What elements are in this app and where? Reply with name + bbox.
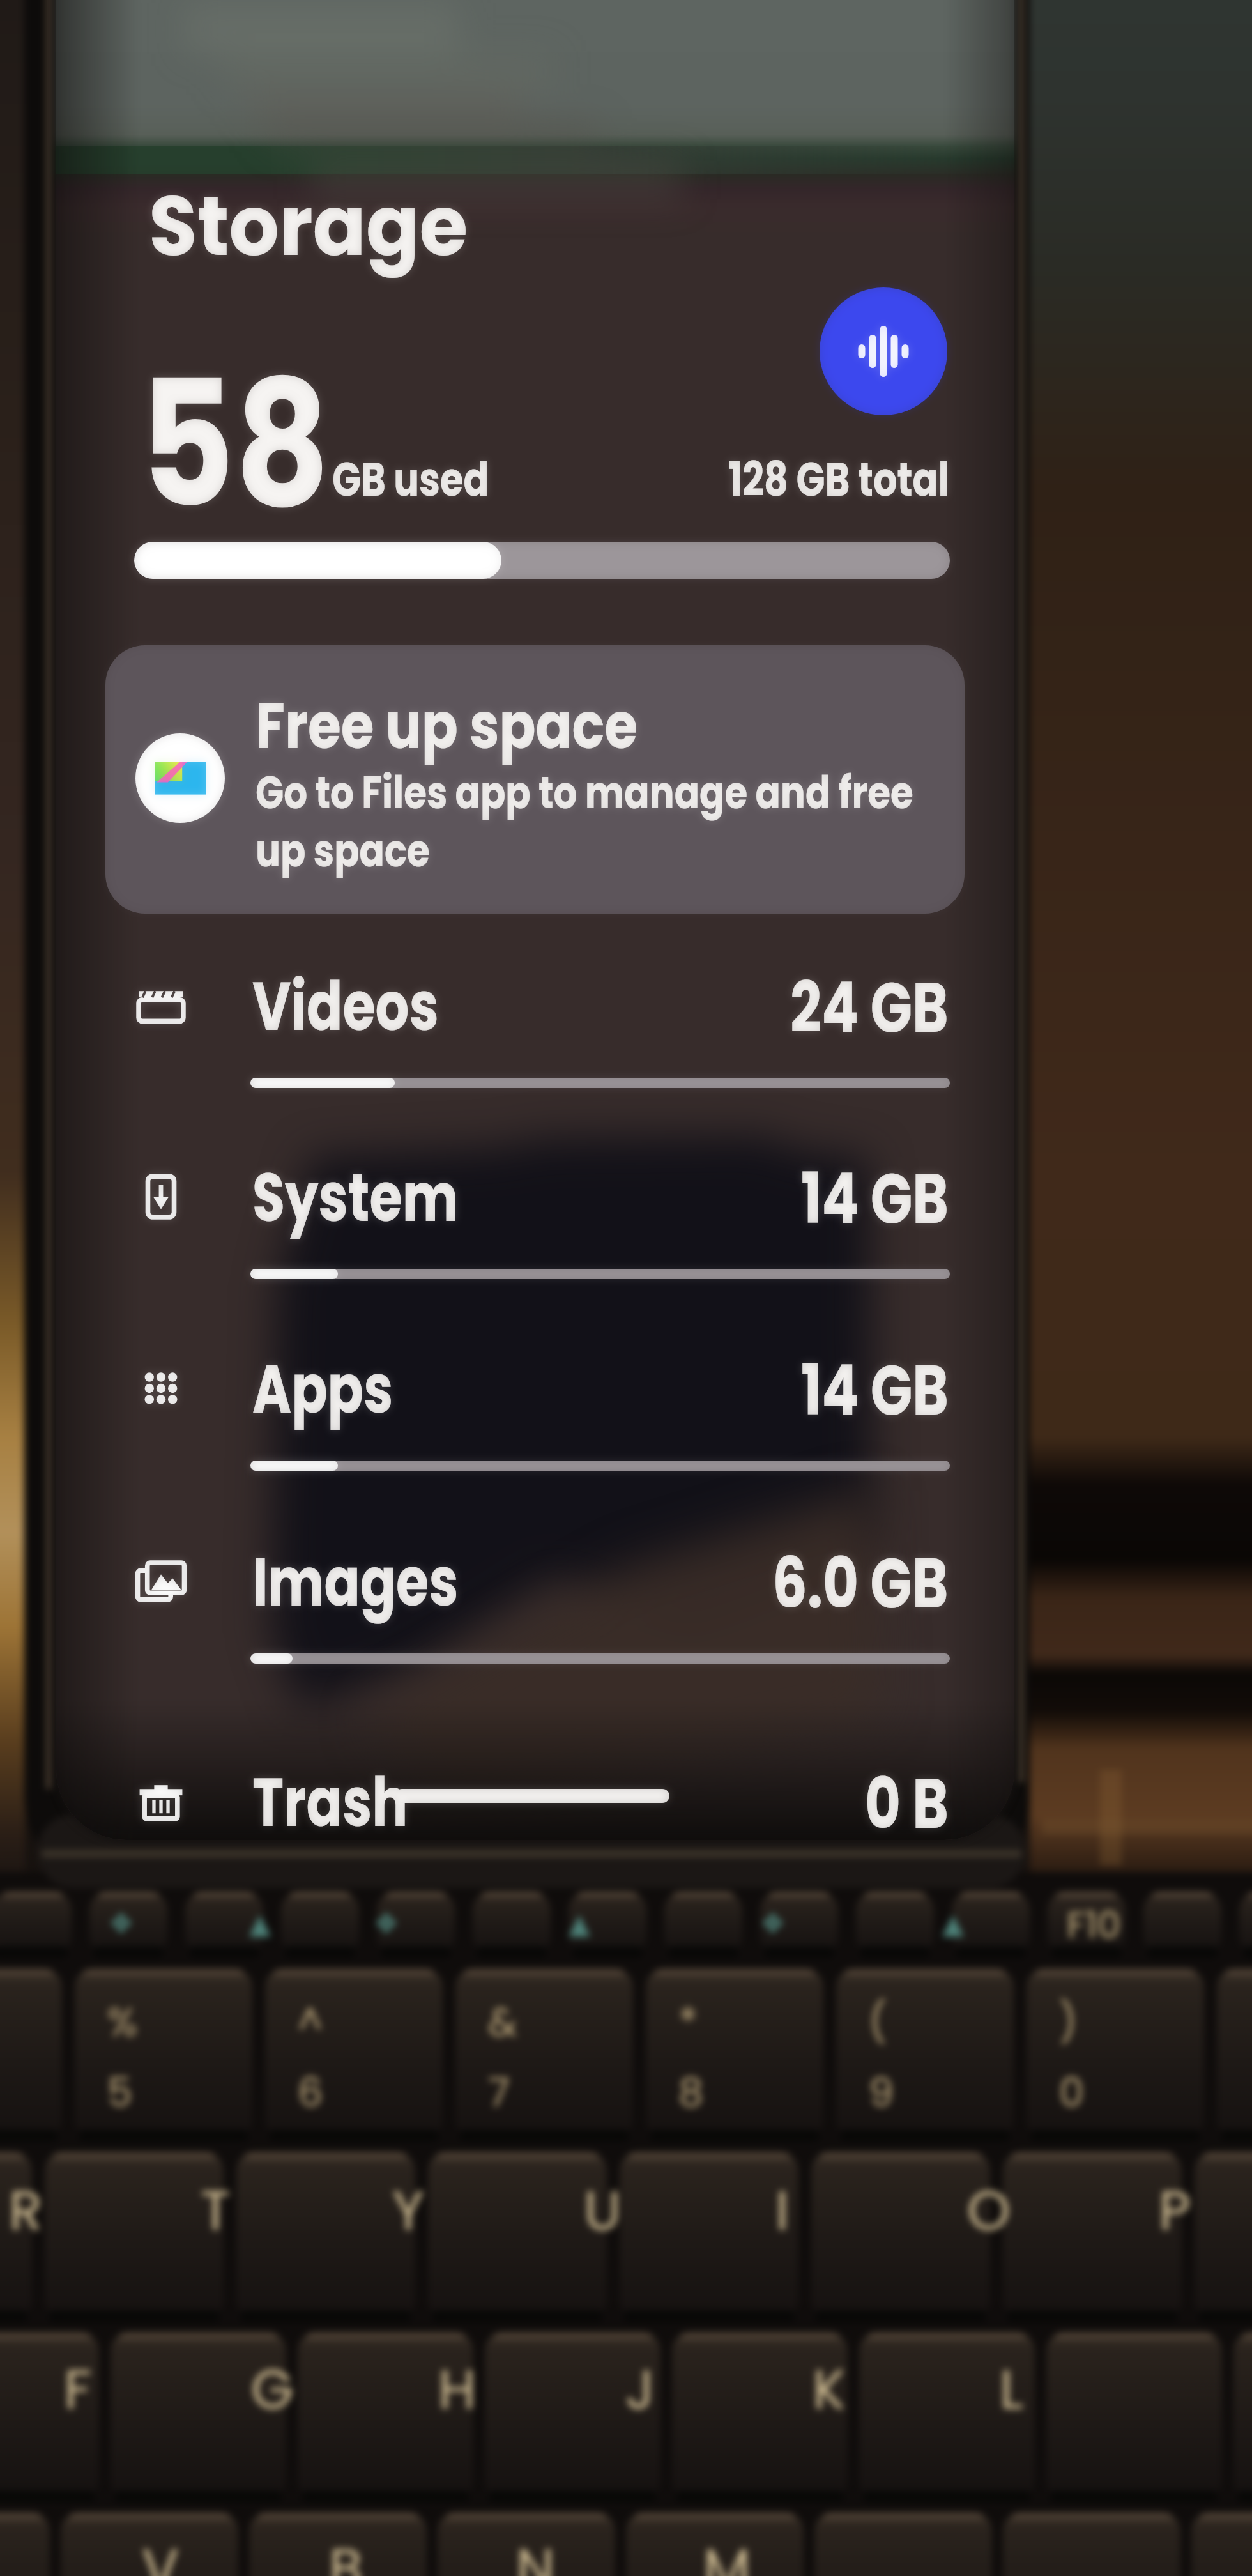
staticText: M [703,2530,751,2576]
staticText: 0 B [865,1754,949,1840]
staticText: J [625,2351,655,2428]
staticText: 14 GB [801,1149,949,1247]
button[interactable] [56,1757,1014,1840]
staticText: R [9,2172,43,2249]
staticText: 0 B [865,1754,949,1840]
button[interactable]: Assistant [820,287,947,415]
staticText: G [251,2351,294,2428]
staticText: Y [392,2172,425,2249]
staticText: 14 GB [801,1341,949,1439]
staticText: Apps [252,1342,393,1437]
staticText: ❖ [374,1907,399,1940]
staticText: F10 [1067,1899,1121,1951]
staticText: Storage [149,167,468,284]
staticText: P [1159,2172,1191,2249]
staticText: ( [869,1995,887,2050]
staticText: ) [1059,1995,1078,2050]
staticText: 14 GB [801,1149,949,1247]
button[interactable]: Free up space [105,645,965,914]
staticText: Videos [252,959,439,1054]
staticText: N [516,2530,555,2576]
staticText: Images [252,1535,459,1629]
staticText: Videos [252,959,439,1054]
staticText: 128 GB total [728,446,949,512]
staticText: 58 [139,322,330,567]
staticText: 6.0 GB [772,1534,949,1632]
button[interactable] [56,1152,1014,1299]
staticText: I [775,2172,790,2249]
button[interactable] [56,1152,1014,1299]
staticText: T [201,2172,231,2249]
staticText: 6 [298,2065,323,2120]
button[interactable]: Free up space [105,645,965,914]
staticText: 7 [488,2065,510,2120]
staticText: Free up space [256,680,638,771]
button[interactable]: Assistant [820,287,947,415]
staticText: 5 [107,2065,132,2120]
staticText: Go to Files app to manage and free [256,762,913,824]
staticText: ▲ [569,1907,590,1940]
staticText: Go to Files app to manage and free [256,762,913,824]
staticText: * [678,1995,698,2050]
staticText: 128 GB total [728,446,949,512]
staticText: ❖ [109,1907,134,1940]
staticText: H [438,2351,477,2428]
staticText: Images [252,1535,459,1629]
staticText: System [252,1150,459,1245]
staticText: F [64,2351,92,2428]
staticText: V [142,2530,179,2576]
staticText: U [584,2172,622,2249]
staticText: up space [256,820,430,882]
staticText: ▲ [942,1907,964,1940]
staticText: 14 GB [801,1341,949,1439]
staticText: 58 [139,322,330,567]
staticText: K [813,2351,846,2428]
staticText: 9 [869,2065,894,2120]
staticText: % [107,1995,138,2050]
staticText: 0 [1059,2065,1084,2120]
staticText: ^ [298,1995,323,2050]
staticText: 24 GB [790,958,949,1056]
button[interactable] [56,1757,1014,1840]
button[interactable] [56,1537,1014,1683]
staticText: Trash [252,1755,408,1840]
staticText: Free up space [256,680,638,771]
staticText: 6.0 GB [772,1534,949,1632]
button[interactable] [56,961,1014,1108]
button[interactable] [56,961,1014,1108]
staticText: GB used [332,446,489,512]
staticText: 24 GB [790,958,949,1056]
button[interactable] [56,1344,1014,1491]
staticText: O [967,2172,1011,2249]
button[interactable] [56,1344,1014,1491]
staticText: up space [256,820,430,882]
staticText: Trash [252,1755,408,1840]
staticText: System [252,1150,459,1245]
staticText: & [488,1995,517,2050]
staticText: B [329,2530,363,2576]
staticText: ❖ [760,1907,786,1940]
staticText: ▲ [249,1907,271,1940]
staticText: Storage [149,167,468,284]
staticText: L [1000,2351,1024,2428]
staticText: Apps [252,1342,393,1437]
staticText: 8 [678,2065,704,2120]
staticText: GB used [332,446,489,512]
button[interactable] [56,1537,1014,1683]
